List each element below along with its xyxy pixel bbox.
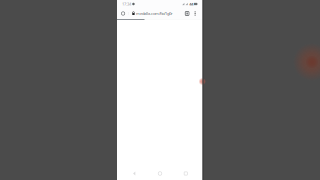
staticText: medalla.com/fio/1g0r xyxy=(136,11,173,16)
button[interactable]: Home xyxy=(151,167,168,179)
staticText: 44 xyxy=(189,1,193,7)
button[interactable]: Back xyxy=(126,167,143,179)
button[interactable]: medalla.com/fio/1g0r xyxy=(129,8,183,19)
button[interactable]: Home xyxy=(118,8,129,19)
staticText: 17:34 xyxy=(122,1,131,7)
button[interactable]: Open tabs xyxy=(183,8,191,19)
button[interactable]: Recent apps xyxy=(177,167,194,179)
button[interactable]: More options xyxy=(191,8,199,19)
